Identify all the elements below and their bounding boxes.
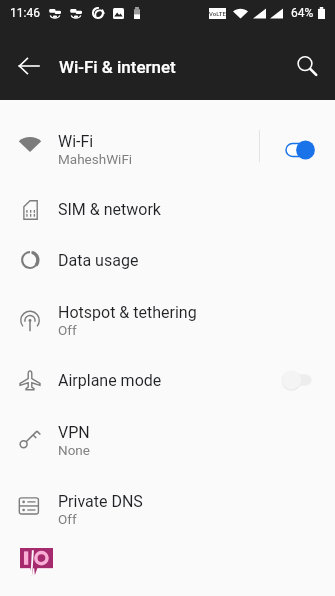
button[interactable]: Airplane mode (0, 355, 335, 406)
staticText: Wi-Fi (58, 132, 94, 151)
staticText: None (58, 442, 90, 458)
staticText: Off (58, 511, 77, 527)
staticText: VoLTE (209, 10, 226, 17)
staticText: 11:46 (10, 6, 40, 20)
button[interactable]: VPN (0, 406, 335, 475)
staticText: SIM & network (58, 200, 161, 219)
button[interactable]: Hotspot & tethering (0, 286, 335, 355)
button[interactable]: Google I/O (20, 548, 53, 576)
button[interactable]: Wi-Fi on (286, 139, 318, 161)
staticText: Data usage (58, 251, 139, 270)
staticText: VPN (58, 423, 90, 442)
button[interactable]: Wi-Fi (0, 115, 335, 184)
button[interactable]: Private DNS (0, 475, 335, 544)
staticText: 64% (291, 6, 314, 20)
staticText: Wi-Fi & internet (59, 57, 176, 77)
button[interactable]: SIM & network (0, 184, 335, 235)
staticText: Airplane mode (58, 371, 162, 390)
button[interactable]: Airplane mode off (282, 369, 314, 391)
button[interactable]: Data usage (0, 235, 335, 286)
staticText: MaheshWiFi (58, 151, 133, 167)
staticText: Off (58, 322, 77, 338)
staticText: Hotspot & tethering (58, 303, 197, 322)
button[interactable]: Navigate up (7, 44, 51, 88)
button[interactable]: Search (285, 44, 329, 88)
staticText: Private DNS (58, 492, 143, 511)
